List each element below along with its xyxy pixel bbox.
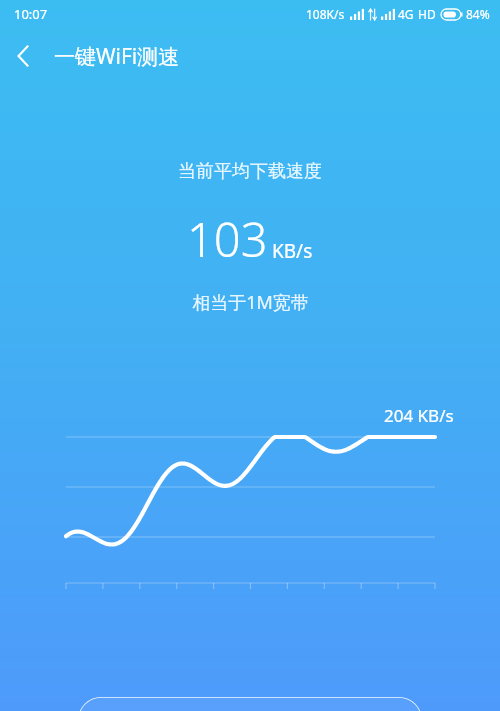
staticText: KB/s bbox=[272, 238, 313, 264]
button[interactable]: Back bbox=[0, 33, 46, 79]
staticText: 4G bbox=[398, 6, 414, 22]
staticText: 10:07 bbox=[14, 5, 48, 23]
staticText: 相当于1M宽带 bbox=[192, 290, 309, 315]
staticText: 当前平均下载速度 bbox=[178, 160, 322, 183]
staticText: 一键WiFi测速 bbox=[54, 42, 180, 71]
staticText: HD bbox=[418, 6, 436, 22]
staticText: 204 KB/s bbox=[384, 404, 454, 427]
button[interactable]: 重新测速 bbox=[78, 697, 422, 711]
staticText: 108K/s bbox=[306, 6, 345, 22]
staticText: 84% bbox=[466, 6, 490, 22]
staticText: 103 bbox=[187, 207, 268, 271]
